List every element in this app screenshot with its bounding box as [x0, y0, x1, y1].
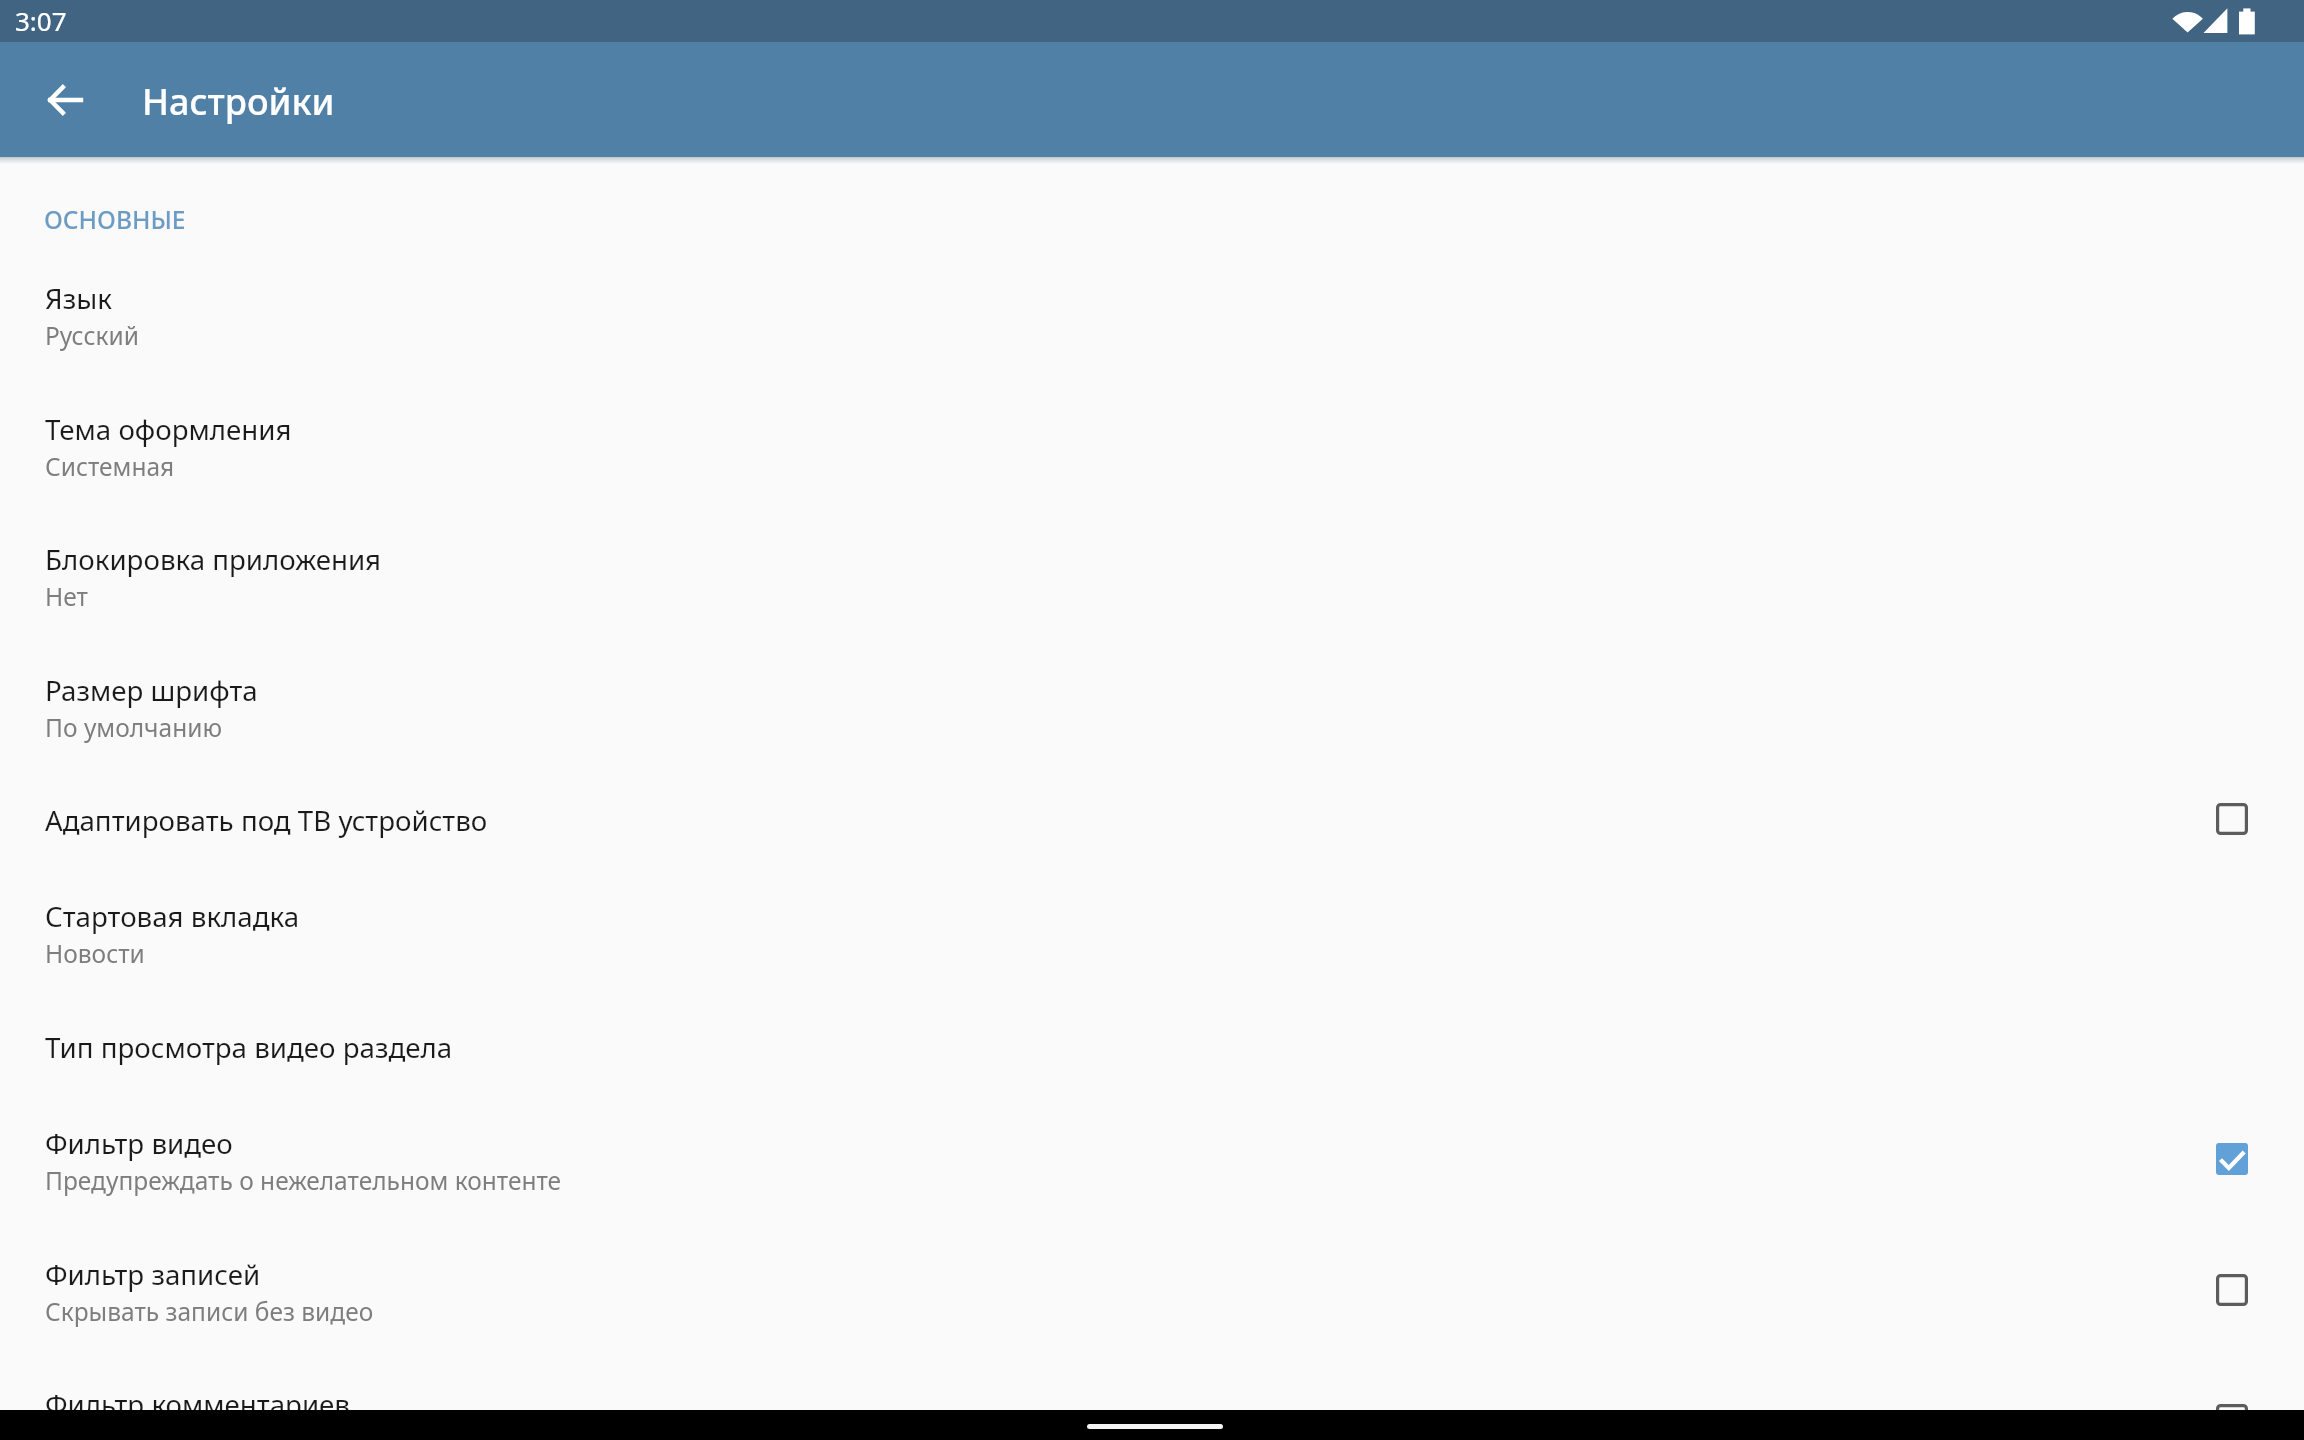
staticText: По умолчанию [45, 711, 222, 744]
staticText: Тип просмотра видео раздела [45, 1028, 453, 1066]
staticText: Фильтр видео [45, 1124, 233, 1162]
button[interactable]: Стартовая вкладка [0, 867, 2304, 998]
button[interactable]: Фильтр записей [0, 1225, 2304, 1356]
staticText: Предупреждать о нежелательном контенте [45, 1164, 562, 1197]
staticText: 3:07 [15, 3, 67, 38]
button[interactable]: Тип просмотра видео раздела [0, 998, 2304, 1094]
button[interactable]: Toggle setting, checked [2216, 1143, 2248, 1175]
staticText: Системная [45, 450, 175, 483]
staticText: Фильтр комментариев [45, 1385, 350, 1423]
button[interactable]: Адаптировать под ТВ устройство [0, 771, 2304, 867]
staticText: Фильтр записей [45, 1255, 261, 1293]
button[interactable]: Тема оформления [0, 380, 2304, 511]
staticText: Язык [45, 279, 112, 317]
button[interactable]: Фильтр комментариев [0, 1355, 2304, 1440]
button[interactable]: Back [16, 52, 112, 148]
staticText: Адаптировать под ТВ устройство [45, 801, 488, 839]
button[interactable]: Toggle setting, unchecked [2216, 803, 2248, 835]
staticText: Новости [45, 937, 145, 970]
staticText: Тема оформления [45, 410, 292, 448]
staticText: Скрывать записи без видео [45, 1295, 374, 1328]
staticText: Настройки [142, 77, 335, 126]
staticText: Блокировка приложения [45, 540, 382, 578]
button[interactable]: Toggle setting, unchecked [2216, 1404, 2248, 1436]
staticText: Нет [45, 580, 88, 613]
staticText: Размер шрифта [45, 671, 258, 709]
button[interactable]: Блокировка приложения [0, 510, 2304, 641]
button[interactable]: Язык [0, 249, 2304, 380]
staticText: Стартовая вкладка [45, 897, 300, 935]
button[interactable]: Toggle setting, unchecked [2216, 1274, 2248, 1306]
staticText: ОСНОВНЫЕ [44, 203, 186, 237]
button[interactable]: Размер шрифта [0, 641, 2304, 772]
staticText: Русский [45, 319, 139, 352]
button[interactable]: Фильтр видео [0, 1094, 2304, 1225]
